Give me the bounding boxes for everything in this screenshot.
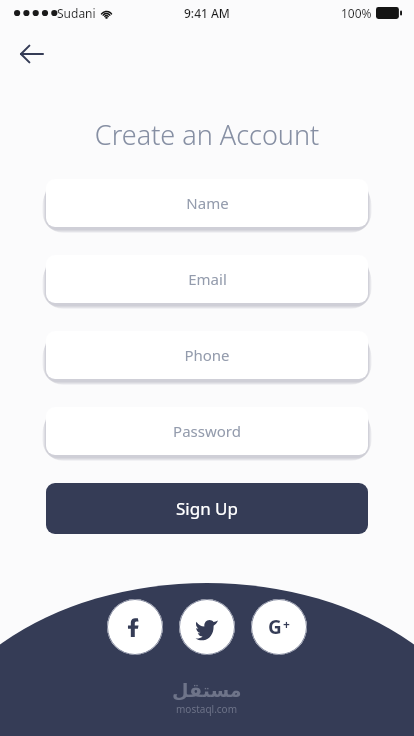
- staticText: 100%: [341, 5, 372, 21]
- staticText: Password: [173, 421, 241, 441]
- button[interactable]: Sign up with Google Plus: [251, 599, 307, 655]
- staticText: G: [268, 614, 282, 640]
- staticText: Email: [188, 269, 227, 289]
- button[interactable]: Password: [46, 407, 368, 455]
- staticText: 9:41 AM: [184, 5, 230, 21]
- staticText: +: [283, 616, 290, 632]
- staticText: Create an Account: [0, 116, 414, 153]
- button[interactable]: Name: [46, 179, 368, 227]
- staticText: Phone: [184, 345, 230, 365]
- staticText: mostaql.com: [176, 702, 238, 716]
- button[interactable]: Sign up with Facebook: [107, 599, 163, 655]
- staticText: Sign Up: [176, 497, 238, 520]
- button[interactable]: Phone: [46, 331, 368, 379]
- staticText: Name: [186, 193, 229, 213]
- button[interactable]: Email: [46, 255, 368, 303]
- staticText: مستقل: [172, 679, 242, 701]
- button[interactable]: Back: [10, 32, 54, 76]
- staticText: Sudani: [57, 5, 96, 21]
- button[interactable]: Sign Up: [46, 483, 368, 534]
- button[interactable]: Sign up with Twitter: [179, 599, 235, 655]
